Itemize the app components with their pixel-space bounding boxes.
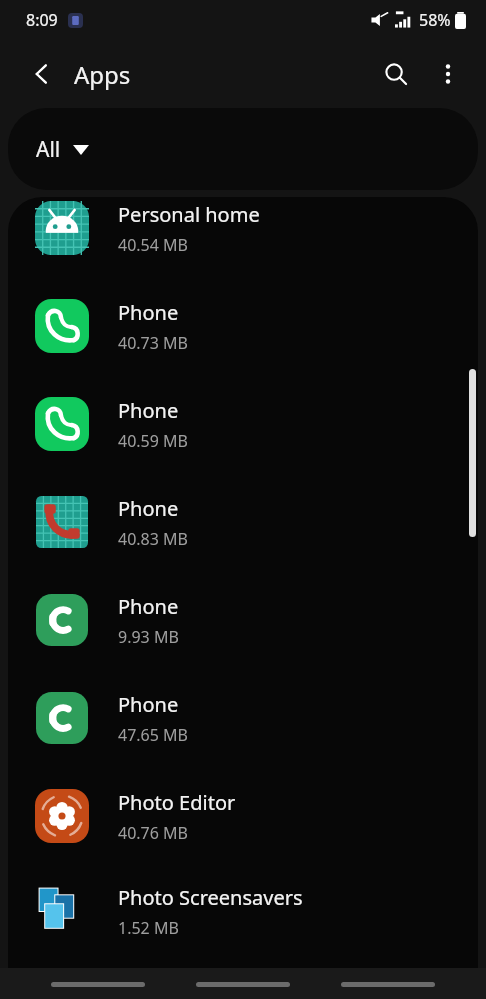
button[interactable]: Phone [8,375,478,473]
staticText: All [36,135,61,164]
button[interactable]: Photo Screensavers [8,865,478,957]
staticText: Photo Editor [118,789,236,816]
staticText: Phone [118,593,179,620]
button[interactable]: Search [370,48,422,100]
staticText: 40.73 MB [118,332,188,354]
staticText: 40.76 MB [118,822,188,844]
staticText: 58% [419,9,451,31]
staticText: Photo Screensavers [118,884,303,911]
button[interactable]: Phone [8,277,478,375]
button[interactable]: More options [422,48,474,100]
staticText: 9.93 MB [118,626,179,648]
button[interactable]: Personal home [8,197,478,277]
button[interactable]: Back [341,974,435,994]
button[interactable]: All [8,108,478,190]
button[interactable]: Photo Editor [8,767,478,865]
staticText: Phone [118,495,179,522]
button[interactable]: Recent apps [51,974,145,994]
button[interactable]: Phone [8,473,478,571]
staticText: Personal home [118,201,260,228]
button[interactable]: Home [196,974,290,994]
button[interactable]: Phone [8,669,478,767]
button[interactable]: Phone [8,571,478,669]
staticText: Phone [118,691,179,718]
button[interactable]: Back [18,50,66,98]
staticText: Phone [118,397,179,424]
staticText: Apps [74,58,131,91]
staticText: 8:09 [26,9,58,31]
staticText: 40.54 MB [118,234,188,256]
staticText: 1.52 MB [118,917,179,939]
staticText: 47.65 MB [118,724,188,746]
staticText: 40.83 MB [118,528,188,550]
staticText: 40.59 MB [118,430,188,452]
staticText: Phone [118,299,179,326]
